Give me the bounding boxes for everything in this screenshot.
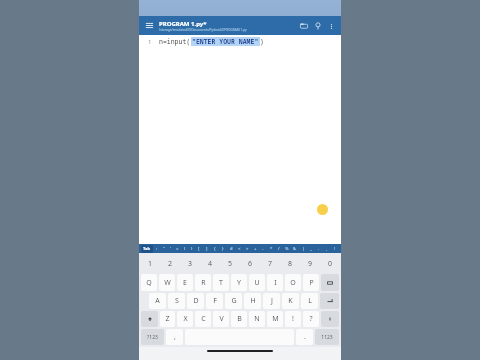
button[interactable]: : (153, 244, 160, 253)
staticText: { (214, 246, 216, 252)
button[interactable]: L (301, 293, 318, 309)
staticText: M (272, 314, 279, 324)
button[interactable]: 6 (240, 254, 260, 273)
button[interactable]: ! (331, 244, 339, 253)
staticText: T (219, 278, 223, 288)
button[interactable]: Open file (297, 19, 311, 33)
button[interactable]: ?123 (141, 329, 164, 345)
staticText: ? (309, 314, 313, 324)
button[interactable]: 1 (140, 254, 160, 273)
button[interactable]: } (219, 244, 227, 253)
button[interactable]: [ (195, 244, 203, 253)
staticText: ' (170, 246, 171, 252)
button[interactable]: ) (188, 244, 195, 253)
button[interactable]: O (285, 274, 301, 291)
button[interactable]: , (323, 244, 331, 253)
button[interactable]: M (267, 311, 283, 327)
button[interactable]: # (227, 244, 235, 253)
button[interactable]: F (206, 293, 223, 309)
button[interactable]: > (243, 244, 251, 253)
staticText: I (274, 278, 277, 288)
staticText: ) (260, 37, 264, 46)
button[interactable]: & (291, 244, 299, 253)
staticText: /storage/emulated/0/Documents/Pydroid3/P… (159, 28, 247, 32)
button[interactable]: 0 (320, 254, 340, 273)
staticText: U (254, 278, 260, 288)
staticText: Q (146, 278, 152, 288)
staticText: ( (184, 246, 186, 252)
staticText: : (156, 246, 158, 252)
staticText: 1 (148, 38, 152, 46)
button[interactable]: Y (231, 274, 247, 291)
button[interactable]: ' (167, 244, 174, 253)
staticText: 1123 (321, 334, 333, 341)
button[interactable]: 7 (260, 254, 280, 273)
button[interactable]: . (315, 244, 323, 253)
button[interactable]: Delete (321, 311, 339, 327)
button[interactable]: I (267, 274, 283, 291)
button[interactable]: 9 (300, 254, 320, 273)
button[interactable]: E (177, 274, 193, 291)
button[interactable]: D (187, 293, 204, 309)
staticText: X (183, 314, 188, 324)
button[interactable]: U (249, 274, 265, 291)
button[interactable]: + (251, 244, 259, 253)
button[interactable]: More options (325, 20, 337, 32)
button[interactable]: , (166, 329, 183, 345)
staticText: " (163, 246, 165, 252)
button[interactable]: 1123 (315, 329, 339, 345)
button[interactable]: ( (181, 244, 188, 253)
button[interactable]: Enter (320, 293, 339, 309)
staticText: 1 (148, 259, 153, 269)
button[interactable]: _ (307, 244, 315, 253)
button[interactable]: < (235, 244, 243, 253)
button[interactable]: 5 (220, 254, 240, 273)
button[interactable]: % (283, 244, 291, 253)
button[interactable]: Backspace (321, 274, 339, 291)
button[interactable]: P (303, 274, 319, 291)
button[interactable]: | (299, 244, 307, 253)
button[interactable]: T (213, 274, 229, 291)
button[interactable]: S (168, 293, 185, 309)
button[interactable]: Menu (143, 19, 156, 32)
button[interactable]: K (282, 293, 299, 309)
button[interactable]: = (174, 244, 181, 253)
staticText: n=input( (159, 37, 191, 46)
button[interactable]: A (149, 293, 166, 309)
button[interactable]: Z (160, 311, 175, 327)
button[interactable]: / (275, 244, 283, 253)
button[interactable]: Shift (141, 311, 158, 327)
button[interactable]: 4 (200, 254, 220, 273)
button[interactable]: C (195, 311, 211, 327)
staticText: ! (334, 246, 336, 252)
button[interactable]: . (296, 329, 313, 345)
button[interactable]: ? (303, 311, 319, 327)
button[interactable]: R (195, 274, 211, 291)
staticText: C (201, 314, 206, 324)
button[interactable]: H (244, 293, 261, 309)
button[interactable]: Q (141, 274, 157, 291)
button[interactable]: 3 (180, 254, 200, 273)
button[interactable]: 8 (280, 254, 300, 273)
staticText: N (254, 314, 260, 324)
button[interactable]: ] (203, 244, 211, 253)
button[interactable]: " (160, 244, 167, 253)
button[interactable]: 2 (160, 254, 180, 273)
button[interactable]: { (211, 244, 219, 253)
button[interactable]: B (231, 311, 247, 327)
button[interactable]: Run (311, 19, 325, 33)
button[interactable]: N (249, 311, 265, 327)
button[interactable]: X (177, 311, 193, 327)
button[interactable]: - (259, 244, 267, 253)
button[interactable]: J (263, 293, 280, 309)
staticText: K (288, 296, 293, 306)
button[interactable]: W (159, 274, 175, 291)
staticText: # (230, 246, 233, 252)
staticText: } (222, 246, 224, 252)
button[interactable]: * (267, 244, 275, 253)
button[interactable]: ! (285, 311, 301, 327)
button[interactable]: G (225, 293, 242, 309)
button[interactable]: Tab (141, 245, 153, 253)
button[interactable]: V (213, 311, 229, 327)
